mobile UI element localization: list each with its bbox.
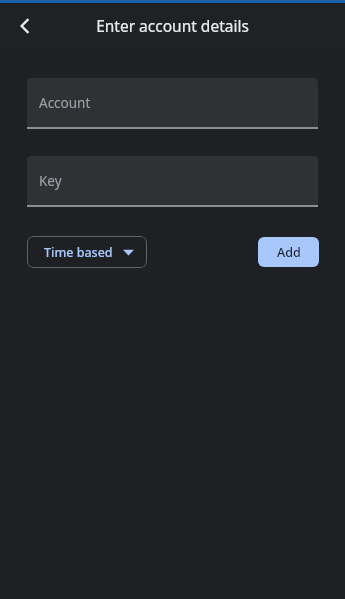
button[interactable]: Account	[27, 78, 318, 127]
staticText: Key	[39, 172, 62, 190]
staticText: Time based	[44, 244, 113, 261]
button[interactable]: Key	[27, 156, 318, 205]
staticText: Add	[277, 244, 301, 261]
staticText: Enter account details	[0, 15, 345, 36]
button[interactable]: Back	[8, 9, 42, 43]
button[interactable]: Time based	[27, 236, 147, 268]
button[interactable]: Add	[258, 237, 319, 267]
staticText: Account	[39, 94, 91, 112]
